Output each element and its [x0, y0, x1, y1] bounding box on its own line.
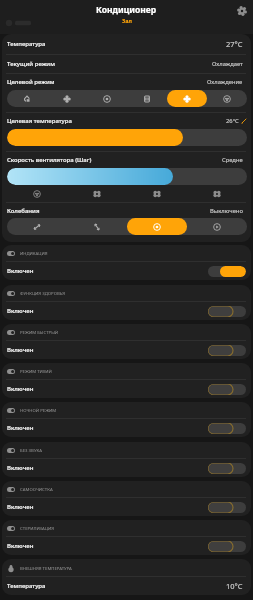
staticText: Включен	[7, 542, 34, 550]
staticText: Кондиционер	[96, 4, 157, 16]
button[interactable]: Turn on	[208, 423, 246, 434]
staticText: Включен	[7, 424, 34, 432]
button[interactable]: Включен	[2, 498, 251, 516]
staticText: Включен	[7, 267, 34, 275]
button[interactable]: Turn on	[208, 502, 246, 513]
button[interactable]: Скорость вентилятора (Шаг)	[2, 152, 251, 168]
staticText: Охлаждает	[212, 60, 243, 68]
staticText: Включен	[7, 503, 34, 511]
staticText: РЕЖИМ ТИХИЙ	[20, 368, 52, 374]
button[interactable]: Target temperature	[7, 129, 247, 146]
staticText: Температура	[7, 40, 46, 48]
button[interactable]: Auto	[7, 90, 47, 107]
button[interactable]: Swing 3	[187, 218, 247, 235]
button[interactable]: Текущий режим	[2, 55, 251, 73]
staticText: ФУНКЦИЯ ЗДОРОВЬЯ	[20, 290, 66, 296]
button[interactable]: Fan speed	[7, 168, 247, 185]
button[interactable]: Fan level 1	[7, 185, 67, 202]
staticText: 26°C	[226, 117, 239, 125]
staticText: Выключено	[210, 207, 243, 215]
staticText: БЕЗ ЗВУКА	[20, 447, 42, 453]
staticText: 10°C	[226, 581, 243, 591]
staticText: Средне	[222, 156, 243, 164]
button[interactable]: Back	[5, 19, 35, 27]
button[interactable]: Колебания	[2, 203, 251, 218]
button[interactable]: Turn on	[208, 384, 246, 395]
button[interactable]: Swing 0	[7, 218, 67, 235]
button[interactable]: Snowflake	[167, 90, 207, 107]
staticText: 27°C	[226, 39, 243, 49]
staticText: Колебания	[7, 207, 40, 215]
staticText: Зал	[122, 17, 132, 24]
staticText: Скорость вентилятора (Шаг)	[7, 156, 92, 164]
button[interactable]: Температура	[2, 34, 251, 54]
button[interactable]: Включен	[2, 262, 251, 280]
button[interactable]: Settings	[233, 2, 251, 20]
button[interactable]: Включен	[2, 537, 251, 555]
button[interactable]: Fan level 4	[187, 185, 247, 202]
staticText: Целевая температура	[7, 117, 72, 125]
staticText: Текущий режим	[7, 60, 55, 68]
button[interactable]: Swing 1	[67, 218, 127, 235]
button[interactable]: Swing 2	[127, 218, 187, 235]
staticText: Включен	[7, 307, 34, 315]
button[interactable]: Целевая температура	[2, 113, 251, 129]
button[interactable]: Включен	[2, 419, 251, 437]
button[interactable]: Turn off	[208, 266, 246, 277]
button[interactable]: Включен	[2, 459, 251, 477]
button[interactable]: Dry	[127, 90, 167, 107]
button[interactable]: Turn on	[208, 463, 246, 474]
button[interactable]: Fan level 2	[67, 185, 127, 202]
button[interactable]: Sun	[87, 90, 127, 107]
button[interactable]: Включен	[2, 380, 251, 398]
button[interactable]: Fan	[207, 90, 247, 107]
button[interactable]: Turn on	[208, 541, 246, 552]
staticText: НОЧНОЙ РЕЖИМ	[20, 407, 57, 413]
staticText: Охлаждение	[207, 78, 243, 86]
staticText: СТЕРИЛИЗАЦИЯ	[20, 525, 55, 531]
staticText: РЕЖИМ БЫСТРЫЙ	[20, 329, 59, 335]
button[interactable]: Температура	[2, 577, 251, 595]
button[interactable]: Turn on	[208, 306, 246, 317]
staticText: Включен	[7, 385, 34, 393]
staticText: Температура	[7, 582, 46, 590]
staticText: Включен	[7, 464, 34, 472]
button[interactable]: Включен	[2, 341, 251, 359]
button[interactable]: Целевой режим	[2, 74, 251, 90]
staticText: САМООЧИСТКА	[20, 486, 53, 492]
staticText: ВНЕШНЯЯ ТЕМПЕРАТУРА	[20, 565, 72, 571]
button[interactable]: Включен	[2, 302, 251, 320]
button[interactable]: Turn on	[208, 345, 246, 356]
staticText: Включен	[7, 346, 34, 354]
button[interactable]: Cool	[47, 90, 87, 107]
staticText: ИНДИКАЦИЯ	[20, 250, 48, 256]
staticText: Целевой режим	[7, 78, 55, 86]
button[interactable]: Fan level 3	[127, 185, 187, 202]
